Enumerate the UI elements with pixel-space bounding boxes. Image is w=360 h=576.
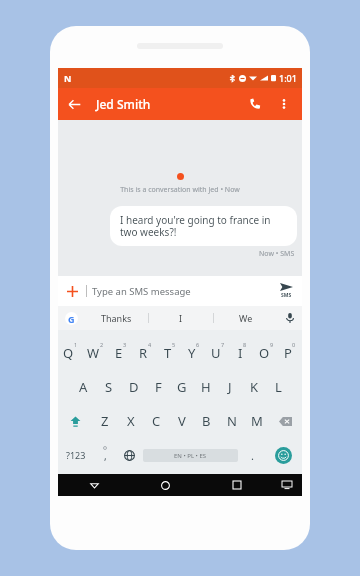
- button[interactable]: G: [170, 370, 194, 404]
- staticText: Y: [188, 344, 196, 362]
- button[interactable]: Back: [58, 88, 90, 120]
- staticText: Thanks: [101, 312, 132, 324]
- button[interactable]: E: [108, 335, 133, 370]
- button[interactable]: We: [214, 306, 278, 330]
- staticText: P: [284, 344, 292, 362]
- button[interactable]: Jed Smith: [96, 96, 151, 112]
- button[interactable]: C: [144, 404, 169, 438]
- staticText: I heard you're going to france in two we…: [120, 213, 287, 239]
- staticText: 7: [221, 341, 225, 348]
- staticText: 5: [172, 341, 176, 348]
- staticText: V: [178, 412, 186, 430]
- staticText: 1: [74, 341, 78, 348]
- staticText: S: [105, 378, 113, 396]
- button[interactable]: Backspace: [269, 404, 302, 438]
- button[interactable]: More options: [270, 90, 298, 118]
- staticText: 2: [100, 341, 104, 348]
- button[interactable]: B: [194, 404, 219, 438]
- button[interactable]: Back: [58, 474, 130, 496]
- button[interactable]: T: [158, 335, 182, 370]
- button[interactable]: Home: [130, 474, 201, 496]
- button[interactable]: H: [194, 370, 218, 404]
- staticText: Z: [101, 412, 109, 430]
- staticText: We: [239, 312, 253, 324]
- staticText: D: [129, 378, 139, 396]
- button[interactable]: V: [169, 404, 194, 438]
- button[interactable]: Send SMS: [270, 276, 302, 306]
- staticText: 6: [196, 341, 200, 348]
- button[interactable]: Thanks: [84, 306, 148, 330]
- staticText: 3: [123, 341, 127, 348]
- button[interactable]: W: [83, 335, 108, 370]
- button[interactable]: M: [244, 404, 269, 438]
- staticText: J: [228, 378, 232, 396]
- button[interactable]: .: [240, 438, 264, 472]
- button[interactable]: Change language: [117, 438, 141, 472]
- button[interactable]: Q: [58, 335, 83, 370]
- button[interactable]: Call: [240, 89, 270, 119]
- staticText: N: [64, 72, 72, 84]
- button[interactable]: ,: [93, 438, 117, 472]
- button[interactable]: S: [96, 370, 121, 404]
- staticText: EN • PL • ES: [174, 452, 207, 460]
- button[interactable]: Shift: [58, 404, 92, 438]
- staticText: M: [251, 412, 263, 430]
- staticText: 1:01: [279, 72, 297, 84]
- staticText: R: [139, 344, 148, 362]
- staticText: H: [201, 378, 211, 396]
- staticText: .: [251, 448, 254, 463]
- button[interactable]: A: [71, 370, 96, 404]
- staticText: A: [79, 378, 88, 396]
- staticText: 9: [270, 341, 274, 348]
- staticText: N: [227, 412, 237, 430]
- staticText: K: [250, 378, 259, 396]
- staticText: Q: [63, 344, 74, 362]
- staticText: This is a conversation with Jed • Now: [58, 185, 302, 195]
- button[interactable]: Emoji: [264, 438, 302, 472]
- button[interactable]: R: [133, 335, 158, 370]
- button[interactable]: Recents: [201, 474, 272, 496]
- button[interactable]: Voice input: [278, 306, 302, 330]
- button[interactable]: X: [118, 404, 144, 438]
- staticText: G: [68, 313, 75, 325]
- staticText: E: [115, 344, 123, 362]
- staticText: C: [152, 412, 161, 430]
- staticText: F: [155, 378, 162, 396]
- button[interactable]: K: [242, 370, 266, 404]
- staticText: ,: [104, 449, 107, 463]
- staticText: I: [238, 344, 243, 362]
- staticText: Now • SMS: [259, 249, 295, 259]
- staticText: SMS: [281, 292, 292, 299]
- staticText: X: [127, 412, 135, 430]
- staticText: I: [179, 312, 183, 324]
- staticText: O: [259, 344, 270, 362]
- button[interactable]: N: [219, 404, 244, 438]
- button[interactable]: I: [230, 335, 254, 370]
- staticText: ?123: [66, 449, 86, 461]
- staticText: T: [164, 344, 172, 362]
- button[interactable]: I: [149, 306, 213, 330]
- staticText: B: [202, 412, 211, 430]
- staticText: 8: [243, 341, 247, 348]
- button[interactable]: D: [121, 370, 146, 404]
- button[interactable]: Add attachment: [58, 277, 86, 305]
- staticText: U: [211, 344, 221, 362]
- staticText: W: [87, 344, 100, 362]
- button[interactable]: I heard you're going to france in two we…: [110, 206, 297, 246]
- button[interactable]: L: [266, 370, 290, 404]
- staticText: 0: [292, 341, 296, 348]
- staticText: L: [275, 378, 282, 396]
- button[interactable]: Hide keyboard: [272, 474, 302, 496]
- button[interactable]: O: [254, 335, 278, 370]
- button[interactable]: Y: [182, 335, 206, 370]
- button[interactable]: Type an SMS message: [92, 285, 270, 298]
- button[interactable]: EN • PL • ES: [143, 449, 238, 462]
- button[interactable]: Google: [58, 306, 84, 330]
- button[interactable]: J: [218, 370, 242, 404]
- staticText: G: [177, 378, 187, 396]
- button[interactable]: P: [278, 335, 302, 370]
- button[interactable]: U: [206, 335, 230, 370]
- button[interactable]: Z: [92, 404, 118, 438]
- button[interactable]: F: [146, 370, 170, 404]
- button[interactable]: ?123: [58, 438, 93, 472]
